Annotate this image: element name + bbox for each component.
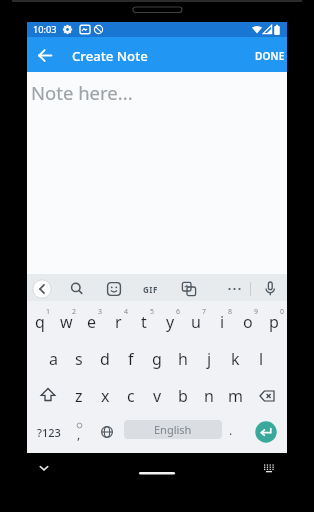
staticText: k xyxy=(231,348,240,370)
button[interactable]: o xyxy=(235,305,261,339)
staticText: n xyxy=(204,385,214,407)
button[interactable] xyxy=(36,460,52,476)
button[interactable] xyxy=(226,280,243,298)
button[interactable]: k xyxy=(222,342,248,376)
button[interactable] xyxy=(261,460,277,476)
staticText: m xyxy=(228,385,243,407)
button[interactable]: e xyxy=(79,305,105,339)
button[interactable]: u xyxy=(183,305,209,339)
button[interactable]: h xyxy=(170,342,196,376)
staticText: h xyxy=(178,348,188,370)
button[interactable]: v xyxy=(144,379,170,413)
button[interactable]: , xyxy=(72,423,86,445)
button[interactable]: DONE xyxy=(253,46,287,65)
staticText: i xyxy=(220,311,225,333)
staticText: 4 xyxy=(124,307,129,317)
staticText: g xyxy=(152,348,162,370)
staticText: a xyxy=(49,348,58,370)
staticText: j xyxy=(207,348,212,370)
staticText: Note here... xyxy=(31,80,133,101)
staticText: y xyxy=(166,311,175,333)
button[interactable] xyxy=(36,46,55,65)
staticText: 9 xyxy=(254,307,259,317)
staticText: English xyxy=(154,422,192,437)
button[interactable]: i xyxy=(209,305,235,339)
button[interactable]: a xyxy=(40,342,66,376)
button[interactable]: p xyxy=(261,305,287,339)
button[interactable] xyxy=(68,280,86,298)
button[interactable]: m xyxy=(222,379,248,413)
button[interactable]: y xyxy=(157,305,183,339)
staticText: 6 xyxy=(176,307,181,317)
staticText: x xyxy=(101,385,110,407)
staticText: ?123 xyxy=(37,425,61,440)
button[interactable] xyxy=(32,279,52,299)
staticText: p xyxy=(269,311,279,333)
button[interactable] xyxy=(36,385,60,407)
button[interactable]: d xyxy=(92,342,118,376)
staticText: v xyxy=(153,385,162,407)
staticText: 0 xyxy=(280,307,285,317)
button[interactable]: f xyxy=(118,342,144,376)
button[interactable] xyxy=(27,72,287,274)
staticText: c xyxy=(127,385,135,407)
staticText: s xyxy=(75,348,83,370)
staticText: 7 xyxy=(202,307,207,317)
button[interactable] xyxy=(180,280,198,298)
staticText: 3 xyxy=(98,307,103,317)
button[interactable]: b xyxy=(170,379,196,413)
button[interactable]: GIF xyxy=(138,280,162,298)
staticText: GIF xyxy=(143,284,158,295)
button[interactable]: . xyxy=(224,420,238,440)
button[interactable] xyxy=(261,279,279,299)
button[interactable] xyxy=(98,423,116,441)
staticText: f xyxy=(128,348,134,370)
button[interactable]: r xyxy=(105,305,131,339)
button[interactable]: q xyxy=(27,305,53,339)
button[interactable] xyxy=(255,421,277,443)
button[interactable]: t xyxy=(131,305,157,339)
staticText: , xyxy=(77,426,81,442)
button[interactable]: l xyxy=(248,342,274,376)
staticText: 1 xyxy=(46,307,51,317)
staticText: t xyxy=(141,311,147,333)
staticText: o xyxy=(243,311,253,333)
button[interactable]: n xyxy=(196,379,222,413)
button[interactable] xyxy=(255,386,279,406)
button[interactable]: j xyxy=(196,342,222,376)
staticText: u xyxy=(191,311,201,333)
staticText: z xyxy=(75,385,83,407)
staticText: 10:03 xyxy=(33,23,57,36)
button[interactable]: c xyxy=(118,379,144,413)
staticText: q xyxy=(35,311,45,333)
staticText: l xyxy=(259,348,264,370)
staticText: b xyxy=(178,385,188,407)
button[interactable]: s xyxy=(66,342,92,376)
staticText: DONE xyxy=(255,49,285,63)
button[interactable]: English xyxy=(124,420,222,439)
button[interactable] xyxy=(105,280,123,298)
button[interactable]: x xyxy=(92,379,118,413)
staticText: Create Note xyxy=(72,47,148,65)
staticText: 5 xyxy=(150,307,155,317)
button[interactable]: ?123 xyxy=(35,421,63,443)
staticText: 2 xyxy=(72,307,77,317)
staticText: e xyxy=(87,311,97,333)
staticText: . xyxy=(229,422,233,438)
staticText: d xyxy=(100,348,110,370)
button[interactable]: g xyxy=(144,342,170,376)
button[interactable]: z xyxy=(66,379,92,413)
staticText: 8 xyxy=(228,307,233,317)
staticText: w xyxy=(60,311,73,333)
button[interactable]: w xyxy=(53,305,79,339)
staticText: r xyxy=(115,311,122,333)
